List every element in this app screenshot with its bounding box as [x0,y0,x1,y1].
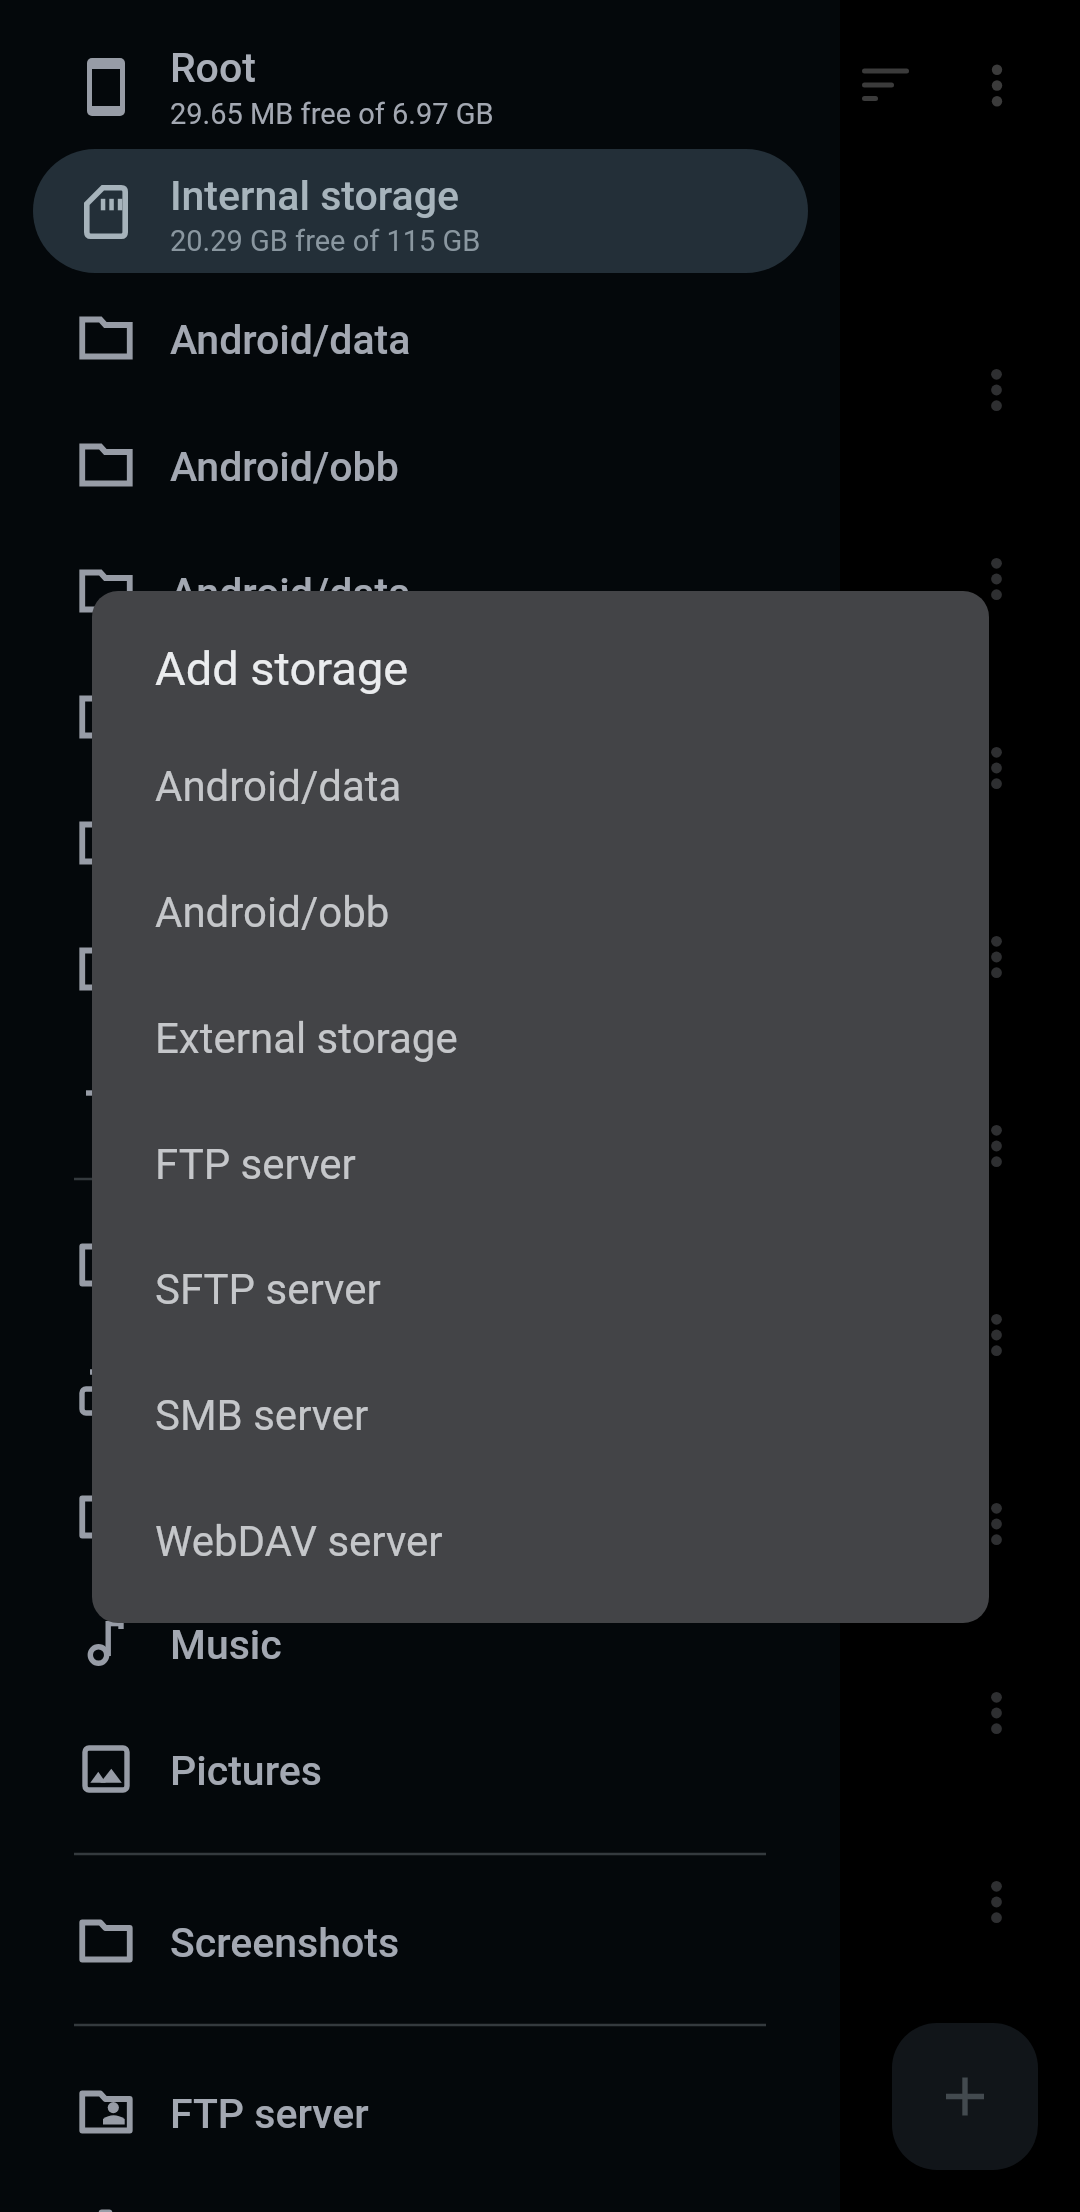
staticText: Pictures [170,1747,322,1795]
staticText: FTP server [155,1140,356,1189]
button[interactable]: FTP server [92,1100,989,1226]
button[interactable]: Android/obb [0,654,840,780]
button[interactable]: Android/data [92,722,989,848]
staticText: Android/obb [170,443,399,491]
button[interactable]: WebDAV server [92,1477,989,1603]
button[interactable]: Android/data [0,528,840,654]
button[interactable]: Movies [0,1328,840,1454]
button[interactable]: Internal storage [33,149,808,273]
button[interactable]: FTP server [0,2049,840,2175]
button[interactable]: Documents [0,1032,840,1158]
button[interactable]: DCIM [0,906,840,1032]
staticText: External storage [155,1014,458,1063]
staticText: 29.65 MB free of 6.97 GB [170,97,494,131]
staticText: Add storage [155,641,409,696]
button[interactable]: Download [0,1202,840,1328]
staticText: WebDAV server [155,1517,443,1566]
staticText: Music [170,1621,282,1669]
button[interactable]: More options [925,13,1069,157]
button[interactable]: Android/obb [92,848,989,974]
button[interactable]: Add storage [892,2023,1038,2170]
button[interactable]: External storage [92,974,989,1100]
staticText: Internal storage [170,172,459,220]
staticText: SMB server [155,1391,369,1440]
staticText: 20.29 GB free of 115 GB [170,224,481,258]
staticText: Music [170,1495,282,1543]
staticText: Android/data [170,316,411,364]
staticText: Movies [170,1369,303,1417]
staticText: Root [170,44,256,92]
button[interactable]: Root [0,22,840,152]
staticText: Screenshots [170,1919,400,1967]
button[interactable]: Music [0,1580,840,1706]
staticText: Android/obb [155,888,390,937]
button[interactable]: SFTP server [92,1225,989,1351]
button[interactable]: Pictures [0,1706,840,1832]
button[interactable]: Music [0,1454,840,1580]
button[interactable]: Android/obb [0,402,840,528]
staticText: Android/data [170,569,411,617]
button[interactable]: Alarms [0,780,840,906]
button[interactable]: Sort [838,13,982,157]
button[interactable]: Android/data [0,275,840,401]
staticText: Download [170,1243,353,1291]
staticText: Android/data [155,762,402,811]
staticText: FTP server [170,2090,369,2138]
button[interactable]: SMB server [92,1351,989,1477]
button[interactable]: Screenshots [0,1878,840,2004]
staticText: SFTP server [155,1265,381,1314]
